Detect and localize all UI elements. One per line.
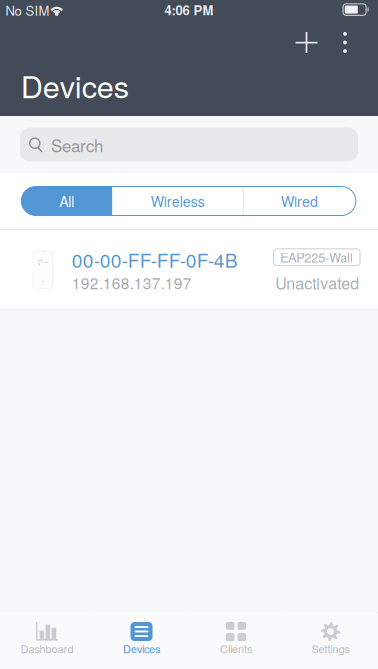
staticText: Dashboard [20,641,73,656]
staticText: EAP225-Wall [280,248,353,266]
staticText: Devices [21,63,129,107]
button[interactable]: 00-00-FF-FF-0F-4B [0,230,378,309]
button[interactable]: Settings [283,612,377,668]
button[interactable]: Search [20,127,358,161]
staticText: All [59,191,74,211]
staticText: Wired [281,191,318,211]
staticText: Search [51,133,103,157]
staticText: Devices [123,641,160,656]
staticText: 4:06 PM [164,1,213,19]
button[interactable]: Clients [189,612,283,668]
button[interactable]: Wired [243,186,356,215]
staticText: Settings [311,641,349,656]
button[interactable]: Wireless [112,186,243,215]
button[interactable]: All [21,186,112,215]
button[interactable]: More options [329,21,361,63]
button[interactable]: Add device [284,21,328,63]
staticText: No SIM [5,1,49,19]
button[interactable]: Devices [94,612,188,668]
staticText: Clients [220,641,252,656]
button[interactable]: Dashboard [0,612,94,668]
staticText: Unactivated [275,271,359,294]
staticText: 00-00-FF-FF-0F-4B [72,246,238,273]
staticText: Wireless [151,191,205,211]
staticText: 192.168.137.197 [72,271,192,293]
